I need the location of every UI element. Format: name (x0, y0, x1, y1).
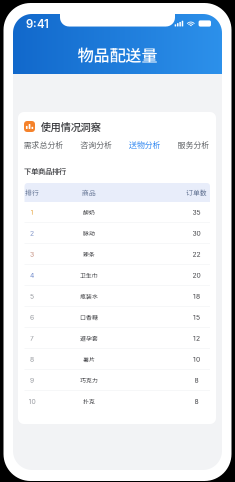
staticText: 脉动 (83, 229, 95, 237)
staticText: 5 (30, 292, 34, 300)
staticText: 薯片 (83, 355, 95, 363)
staticText: 瓶装水 (80, 292, 98, 300)
staticText: 巧克力 (80, 376, 98, 384)
staticText: 1 (30, 208, 33, 216)
staticText: 20 (192, 271, 200, 279)
staticText: 12 (193, 334, 200, 342)
staticText: 下单商品排行 (24, 166, 66, 176)
staticText: 9 (30, 376, 34, 384)
staticText: 使用情况洞察 (40, 119, 100, 134)
staticText: 18 (193, 292, 200, 300)
staticText: 物品配送量 (77, 43, 157, 66)
staticText: 22 (192, 250, 200, 258)
staticText: 订单数 (186, 188, 207, 197)
button[interactable]: 咨询分析 (80, 139, 112, 149)
staticText: 2 (30, 229, 34, 237)
staticText: 15 (193, 313, 200, 321)
staticText: 6 (30, 313, 34, 321)
staticText: 口香糖 (80, 313, 98, 321)
button[interactable]: 服务分析 (177, 139, 209, 149)
staticText: 商品 (82, 188, 96, 197)
staticText: 9:41 (26, 17, 49, 31)
staticText: 扑克 (83, 397, 95, 406)
staticText: 3 (30, 250, 34, 258)
staticText: 30 (192, 229, 200, 237)
staticText: 8 (194, 397, 198, 406)
staticText: 35 (192, 208, 200, 216)
staticText: 排行 (25, 188, 39, 197)
staticText: 酸奶 (83, 208, 95, 216)
staticText: 咨询分析 (80, 139, 112, 150)
staticText: 送物分析 (129, 139, 161, 150)
staticText: 8 (194, 376, 198, 384)
staticText: 10 (28, 397, 35, 406)
staticText: 服务分析 (177, 139, 209, 150)
button[interactable]: 需求总分析 (23, 139, 63, 149)
staticText: 4 (30, 271, 34, 279)
staticText: 8 (30, 355, 34, 363)
staticText: 10 (193, 355, 200, 363)
staticText: 避孕套 (80, 334, 98, 342)
staticText: 辣条 (83, 250, 95, 258)
staticText: 卫生巾 (80, 271, 98, 279)
button[interactable]: 送物分析 (129, 139, 161, 149)
staticText: 7 (30, 334, 34, 342)
staticText: 需求总分析 (23, 139, 63, 150)
